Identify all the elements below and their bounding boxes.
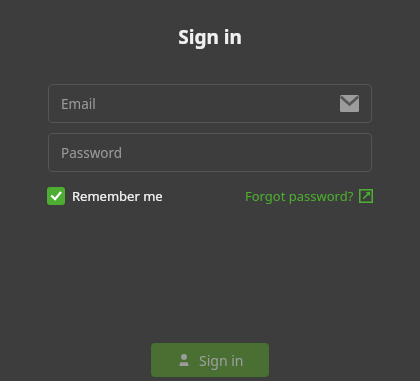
button[interactable]: Sign in (151, 343, 269, 377)
button[interactable]: Remember me (47, 187, 167, 205)
staticText: Password (61, 144, 123, 162)
button[interactable]: Password (48, 133, 372, 172)
staticText: Sign in (199, 351, 244, 370)
other: Forgot password (359, 189, 373, 203)
button[interactable]: Email (48, 84, 372, 123)
other: Email (340, 95, 359, 112)
button[interactable]: Forgot password? (245, 187, 373, 205)
staticText: Forgot password? (245, 187, 354, 205)
staticText: Email (61, 95, 96, 113)
staticText: Sign in (0, 24, 420, 50)
staticText: Remember me (72, 187, 163, 205)
